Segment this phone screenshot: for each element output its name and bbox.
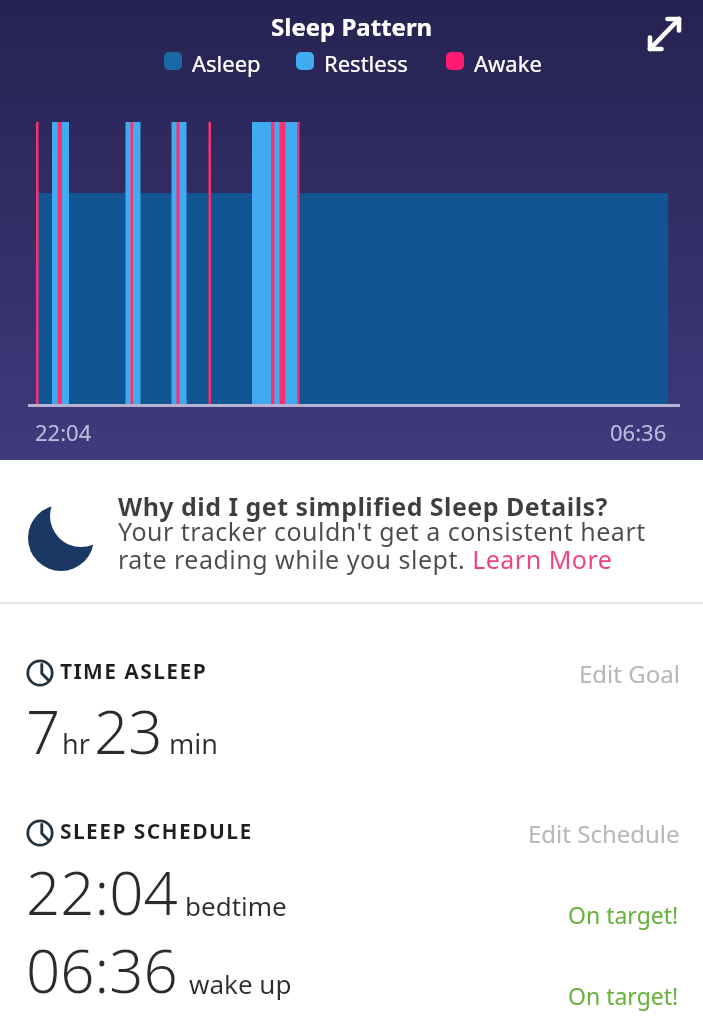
- staticText: 22:04: [35, 417, 92, 447]
- staticText: TIME ASLEEP: [60, 657, 208, 686]
- staticText: 7: [26, 690, 61, 772]
- staticText: hr: [62, 725, 90, 762]
- staticText: Awake: [474, 48, 542, 78]
- staticText: 23: [94, 690, 163, 772]
- staticText: On target!: [568, 899, 679, 930]
- button[interactable]: Your tracker couldn't get a consistent h…: [118, 514, 646, 576]
- staticText: wake up: [189, 966, 292, 1001]
- staticText: SLEEP SCHEDULE: [60, 817, 253, 846]
- staticText: On target!: [568, 980, 679, 1011]
- button[interactable]: Edit Goal: [579, 657, 680, 690]
- staticText: bedtime: [185, 888, 287, 923]
- staticText: Sleep Pattern: [271, 10, 433, 43]
- staticText: 06:36: [26, 929, 178, 1011]
- staticText: Asleep: [192, 48, 261, 78]
- staticText: 22:04: [26, 851, 178, 933]
- button[interactable]: [641, 12, 685, 56]
- staticText: 06:36: [610, 417, 667, 447]
- staticText: min: [169, 725, 218, 762]
- staticText: Restless: [324, 48, 408, 78]
- button[interactable]: Edit Schedule: [528, 817, 680, 850]
- staticText: Why did I get simplified Sleep Details?: [118, 489, 608, 523]
